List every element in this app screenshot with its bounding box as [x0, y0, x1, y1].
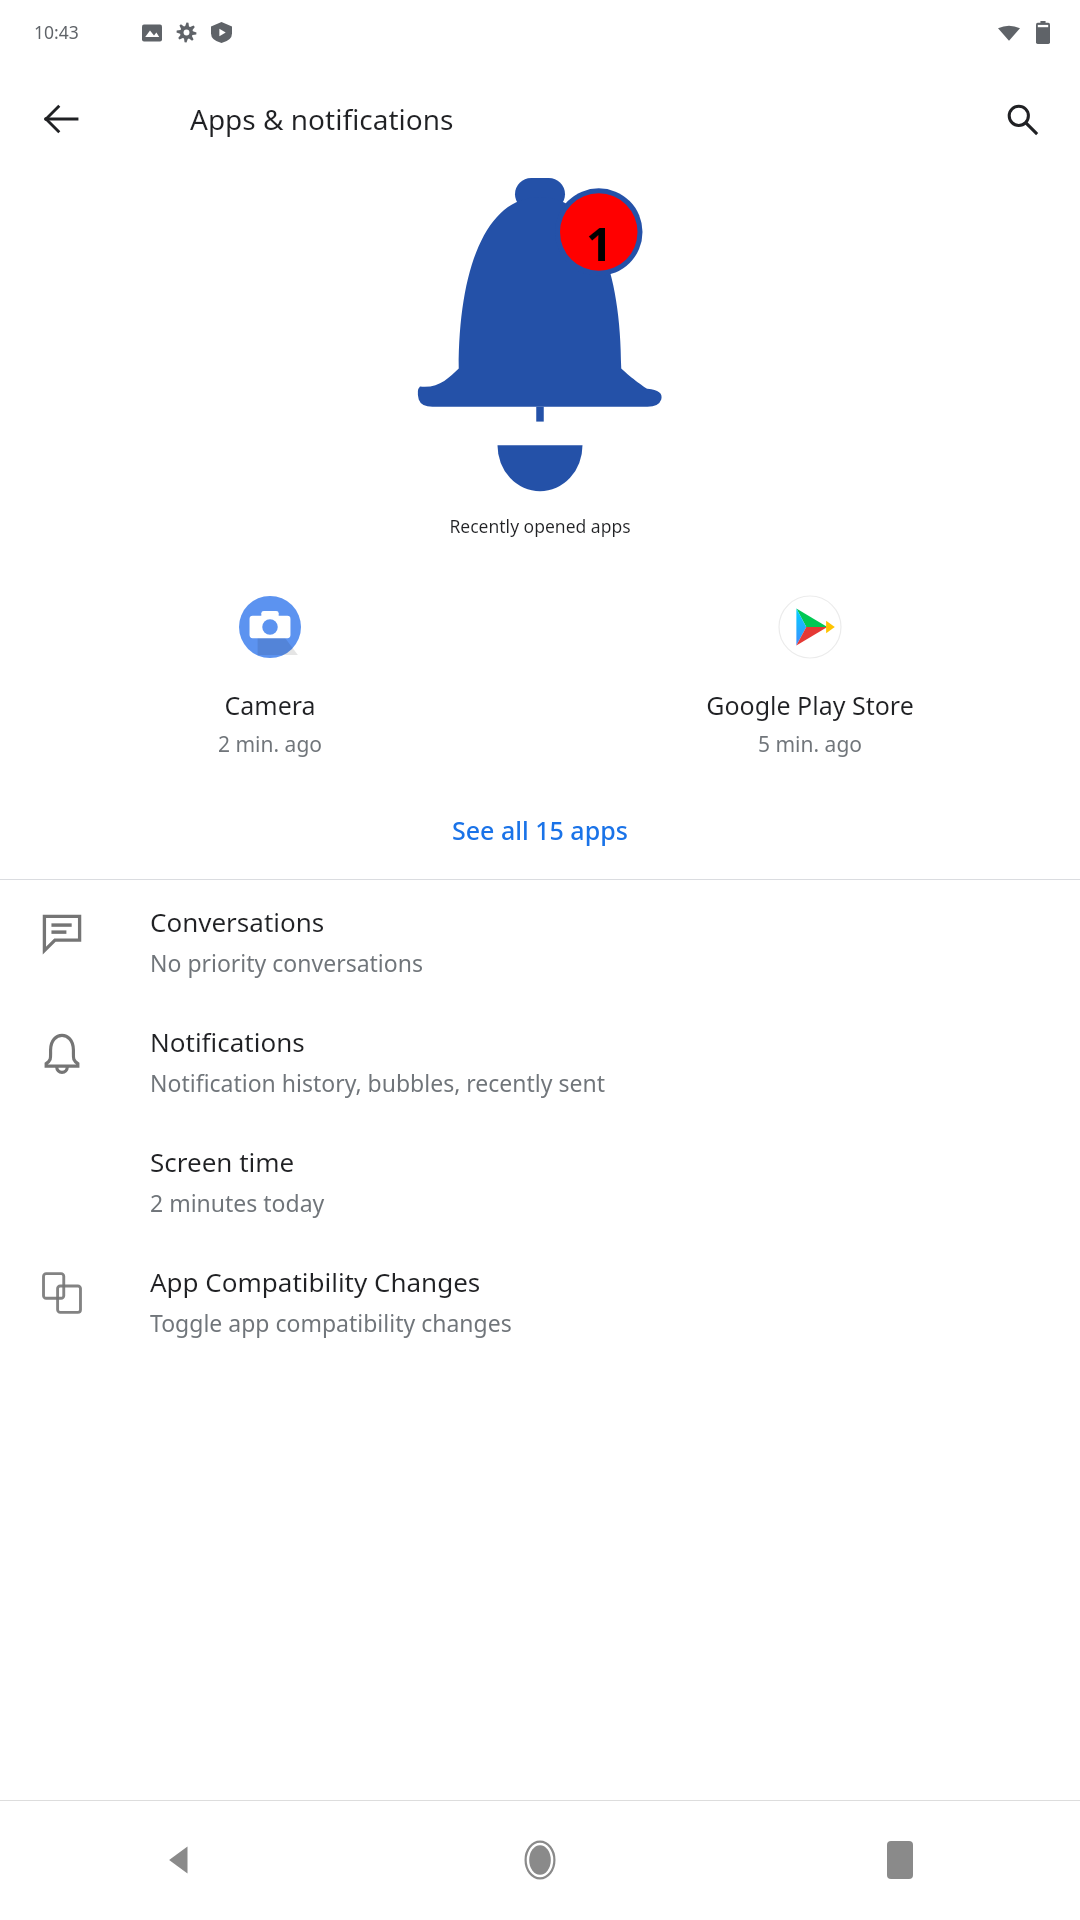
staticText: 2 minutes today: [150, 1187, 325, 1218]
staticText: Camera: [224, 688, 316, 722]
button[interactable]: App Compatibility Changes: [0, 1240, 1080, 1360]
staticText: Recently opened apps: [0, 514, 1080, 538]
button[interactable]: Screen time: [0, 1120, 1080, 1240]
button[interactable]: Back: [25, 83, 97, 155]
staticText: 10:43: [34, 20, 79, 44]
staticText: Notifications: [150, 1024, 305, 1059]
button[interactable]: Notifications: [0, 1000, 1080, 1120]
button[interactable]: Search: [986, 83, 1058, 155]
staticText: 1: [586, 212, 613, 275]
staticText: Toggle app compatibility changes: [150, 1307, 512, 1338]
button[interactable]: Recent apps: [720, 1800, 1080, 1920]
staticText: See all 15 apps: [452, 813, 628, 847]
button[interactable]: See all 15 apps: [0, 799, 1080, 861]
staticText: Apps & notifications: [190, 100, 454, 138]
staticText: 2 min. ago: [218, 730, 322, 759]
staticText: Google Play Store: [706, 688, 914, 722]
staticText: 5 min. ago: [758, 730, 862, 759]
staticText: Notification history, bubbles, recently …: [150, 1067, 606, 1098]
button[interactable]: Google Play Store: [540, 592, 1080, 759]
button[interactable]: Back: [0, 1800, 360, 1920]
staticText: Conversations: [150, 904, 325, 939]
button[interactable]: Conversations: [0, 880, 1080, 1000]
button[interactable]: Home: [360, 1800, 720, 1920]
staticText: No priority conversations: [150, 947, 423, 978]
button[interactable]: Camera: [0, 592, 540, 759]
staticText: App Compatibility Changes: [150, 1264, 481, 1299]
staticText: Screen time: [150, 1144, 295, 1179]
